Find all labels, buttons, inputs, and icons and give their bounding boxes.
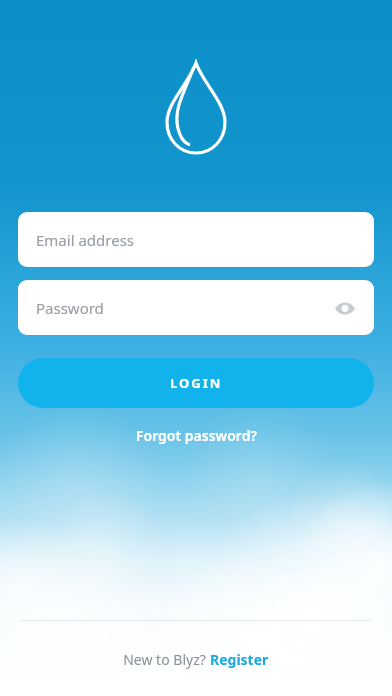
staticText: LOGIN [170,374,223,392]
button[interactable]: Forgot password? [126,422,267,449]
button[interactable]: Register [208,647,271,672]
button[interactable]: LOGIN [18,358,374,408]
button[interactable]: Show password [330,293,360,323]
staticText: Password [36,298,104,318]
staticText: Forgot password? [136,426,257,445]
staticText: New to Blyz? [121,650,208,669]
button[interactable]: Email address [18,212,374,267]
staticText: Email address [36,230,135,250]
button[interactable]: Password [18,280,374,335]
staticText: Register [210,650,269,669]
